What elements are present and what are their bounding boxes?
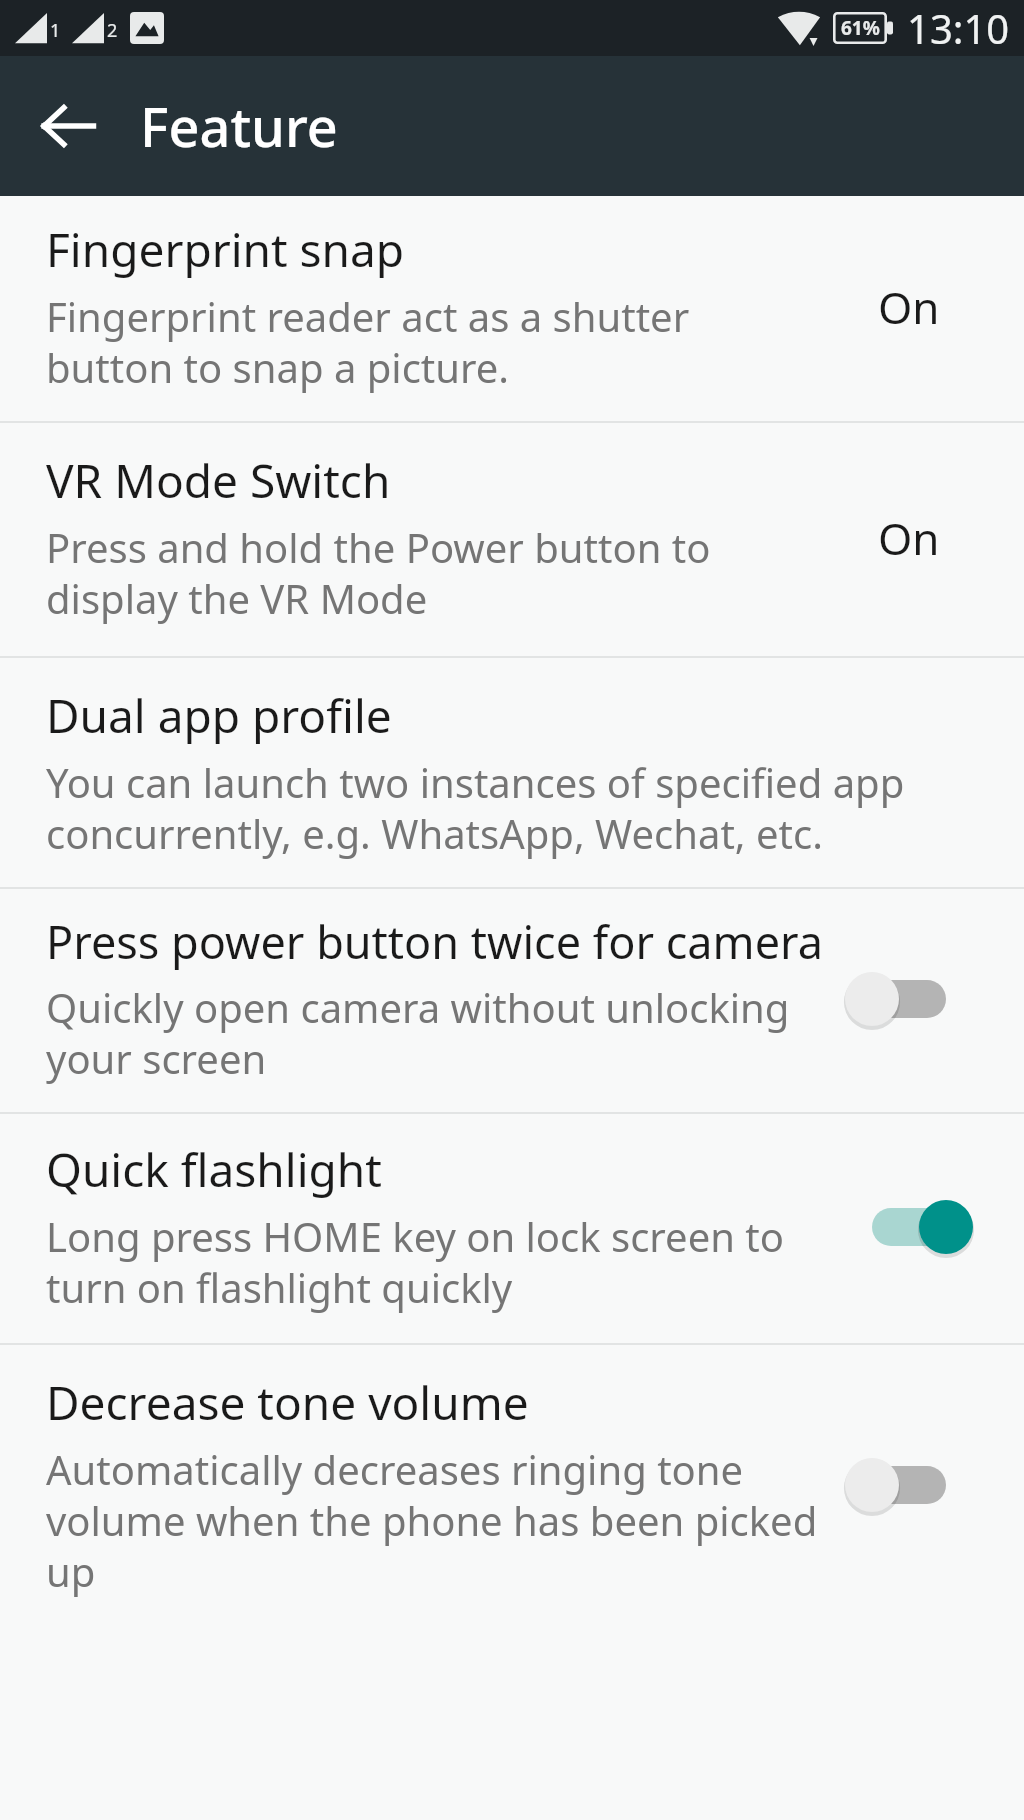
button[interactable]: Fingerprint snap <box>0 196 1024 421</box>
button[interactable]: VR Mode Switch <box>0 423 1024 656</box>
button[interactable]: Toggle off <box>851 1449 967 1521</box>
staticText: You can launch two instances of specifie… <box>46 755 964 861</box>
staticText: Automatically decreases ringing tone vol… <box>46 1442 824 1599</box>
staticText: Long press HOME key on lock screen to tu… <box>46 1209 824 1315</box>
staticText: Quick flashlight <box>46 1138 382 1201</box>
button[interactable]: Back <box>24 82 112 170</box>
staticText: VR Mode Switch <box>46 449 391 512</box>
button[interactable]: Press power button twice for camera <box>0 889 1024 1112</box>
staticText: Feature <box>140 89 338 163</box>
staticText: Quickly open camera without unlocking yo… <box>46 980 824 1086</box>
staticText: On <box>878 277 940 337</box>
staticText: 2 <box>107 18 118 43</box>
staticText: Fingerprint reader act as a shutter butt… <box>46 289 824 395</box>
button[interactable]: Toggle off <box>851 963 967 1035</box>
staticText: Press and hold the Power button to displ… <box>46 520 824 626</box>
staticText: Press power button twice for camera <box>46 911 823 972</box>
button[interactable]: Decrease tone volume <box>0 1345 1024 1625</box>
staticText: Decrease tone volume <box>46 1371 529 1434</box>
staticText: 1 <box>50 18 61 43</box>
staticText: 13:10 <box>907 1 1010 55</box>
staticText: On <box>878 508 940 568</box>
button[interactable]: Dual app profile <box>0 658 1024 887</box>
staticText: 61% <box>841 15 880 41</box>
staticText: Dual app profile <box>46 684 392 747</box>
staticText: Fingerprint snap <box>46 218 405 281</box>
button[interactable]: Toggle on <box>851 1191 967 1263</box>
button[interactable]: Quick flashlight <box>0 1114 1024 1343</box>
